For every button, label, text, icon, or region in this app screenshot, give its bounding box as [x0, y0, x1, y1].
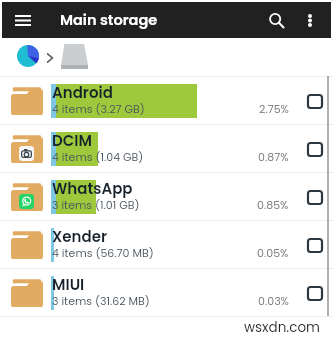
button[interactable]: More options — [293, 3, 327, 37]
staticText: DCIM — [52, 130, 92, 151]
button[interactable]: Storage usage — [17, 45, 39, 67]
button[interactable]: Android — [0, 77, 333, 124]
button[interactable]: DCIM — [0, 125, 333, 172]
staticText: 0.03% — [258, 293, 289, 308]
staticText: 4 items (56.70 MB) — [52, 245, 154, 260]
button[interactable]: Select WhatsApp — [302, 184, 328, 210]
button[interactable]: Main storage — [61, 44, 88, 69]
staticText: wsxdn.com — [244, 318, 320, 337]
button[interactable]: Xender — [0, 221, 333, 268]
staticText: 0.87% — [258, 149, 289, 164]
staticText: Android — [52, 82, 113, 103]
staticText: WhatsApp — [52, 178, 133, 199]
staticText: 4 items (3.27 GB) — [52, 101, 145, 116]
staticText: Main storage — [60, 10, 158, 30]
staticText: MIUI — [52, 274, 85, 295]
staticText: 0.05% — [257, 245, 289, 260]
button[interactable]: Select DCIM — [302, 136, 328, 162]
button[interactable]: MIUI — [0, 269, 333, 316]
staticText: 4 items (1.04 GB) — [52, 149, 144, 164]
button[interactable]: Select Android — [302, 88, 328, 114]
button[interactable]: Select MIUI — [302, 280, 328, 306]
staticText: 2.75% — [259, 101, 289, 116]
button[interactable]: Search — [259, 3, 293, 37]
button[interactable]: Navigation menu — [2, 2, 44, 38]
staticText: 0.85% — [257, 197, 289, 212]
staticText: 3 items (1.01 GB) — [52, 197, 140, 212]
staticText: Xender — [52, 226, 107, 247]
staticText: 3 items (31.62 MB) — [52, 293, 150, 308]
button[interactable]: WhatsApp — [0, 173, 333, 220]
button[interactable]: Select Xender — [302, 232, 328, 258]
